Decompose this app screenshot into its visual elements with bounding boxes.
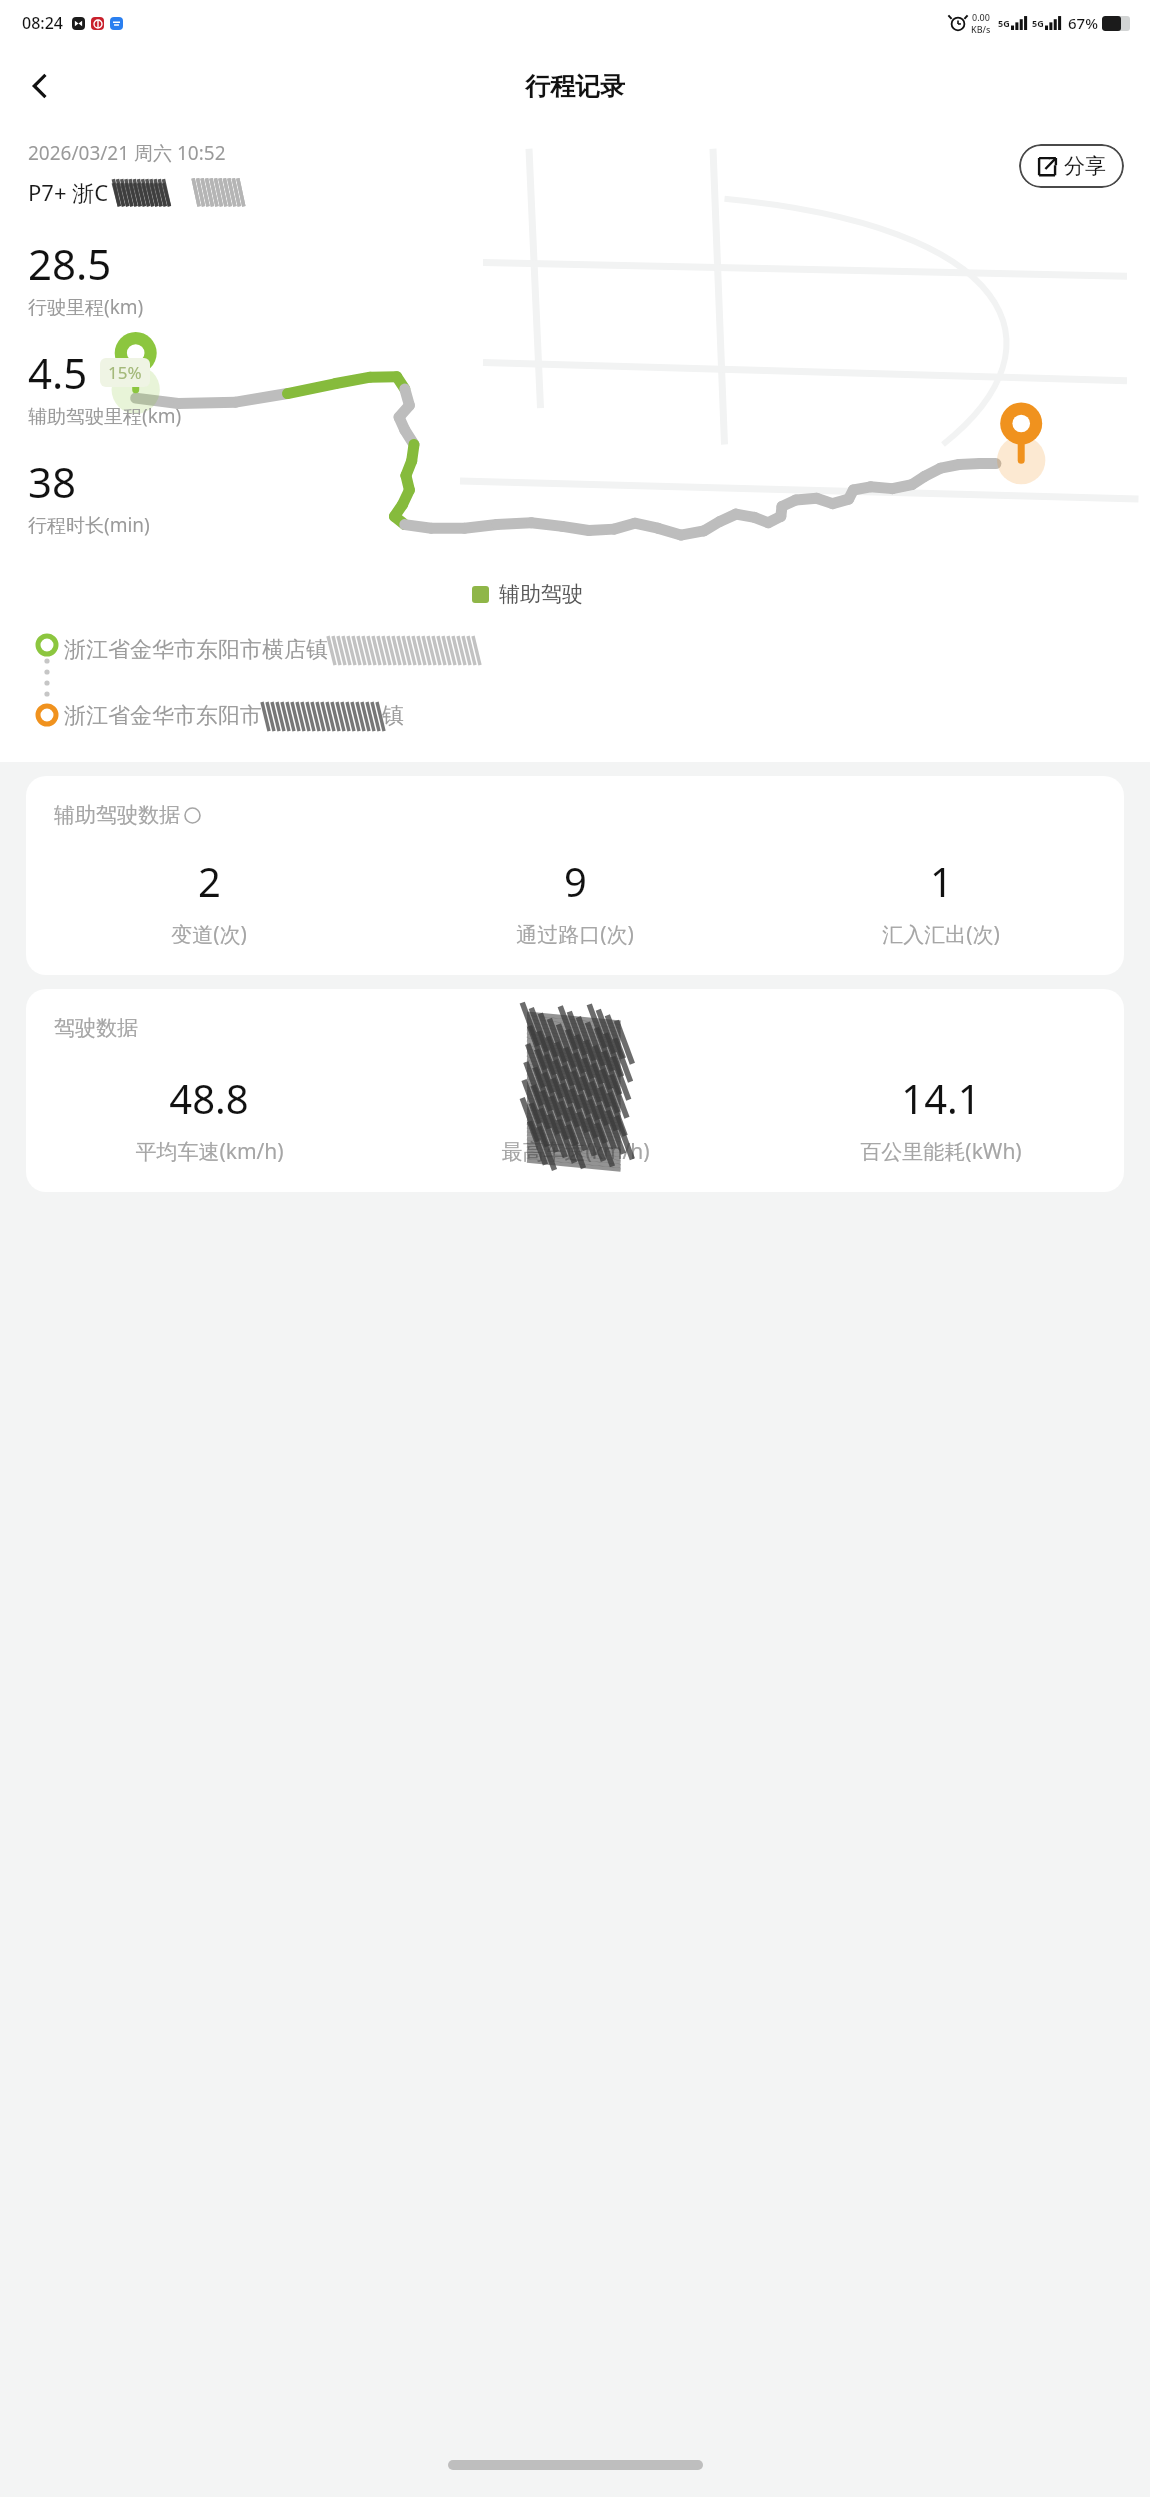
- staticText: 9: [564, 854, 587, 908]
- staticText: 分享: [1064, 153, 1106, 179]
- staticText: 1: [930, 854, 953, 908]
- staticText: 28.5: [28, 235, 112, 292]
- staticText: 14.1: [901, 1071, 981, 1125]
- staticText: 行驶里程(km): [28, 294, 144, 320]
- staticText: 平均车速(km/h): [135, 1137, 284, 1166]
- button[interactable]: Back: [12, 58, 68, 114]
- staticText: 67%: [1068, 13, 1098, 33]
- staticText: 0.00: [972, 11, 990, 23]
- staticText: 5G: [998, 17, 1010, 29]
- staticText: 汇入汇出(次): [882, 920, 1000, 949]
- staticText: 行程时长(min): [28, 512, 150, 538]
- staticText: 辅助驾驶里程(km): [28, 403, 182, 429]
- staticText: 百公里能耗(kWh): [860, 1137, 1022, 1166]
- staticText: 08:24: [22, 12, 63, 34]
- staticText: 4.5: [28, 344, 88, 401]
- button[interactable]: 辅助驾驶数据: [26, 776, 1124, 975]
- button[interactable]: 驾驶数据: [26, 989, 1124, 1192]
- staticText: 行程记录: [525, 71, 625, 102]
- staticText: 变道(次): [171, 920, 247, 949]
- staticText: 镇: [382, 702, 404, 730]
- staticText: 浙江省金华市东阳市横店镇: [64, 636, 328, 664]
- staticText: 辅助驾驶: [499, 581, 583, 607]
- staticText: 5G: [1032, 17, 1044, 29]
- staticText: 最高车速(km/h): [501, 1137, 650, 1166]
- staticText: 15%: [108, 361, 142, 384]
- staticText: 通过路口(次): [516, 920, 634, 949]
- staticText: 驾驶数据: [54, 1015, 138, 1041]
- button[interactable]: 分享: [1019, 144, 1124, 188]
- staticText: 2: [198, 854, 221, 908]
- staticText: 浙江省金华市东阳市: [64, 702, 262, 730]
- staticText: 2026/03/21 周六 10:52: [28, 140, 226, 166]
- staticText: 48.8: [169, 1071, 249, 1125]
- staticText: 38: [28, 453, 77, 510]
- staticText: 辅助驾驶数据: [54, 802, 180, 828]
- staticText: KB/s: [971, 23, 991, 35]
- staticText: P7+ 浙C: [28, 177, 109, 207]
